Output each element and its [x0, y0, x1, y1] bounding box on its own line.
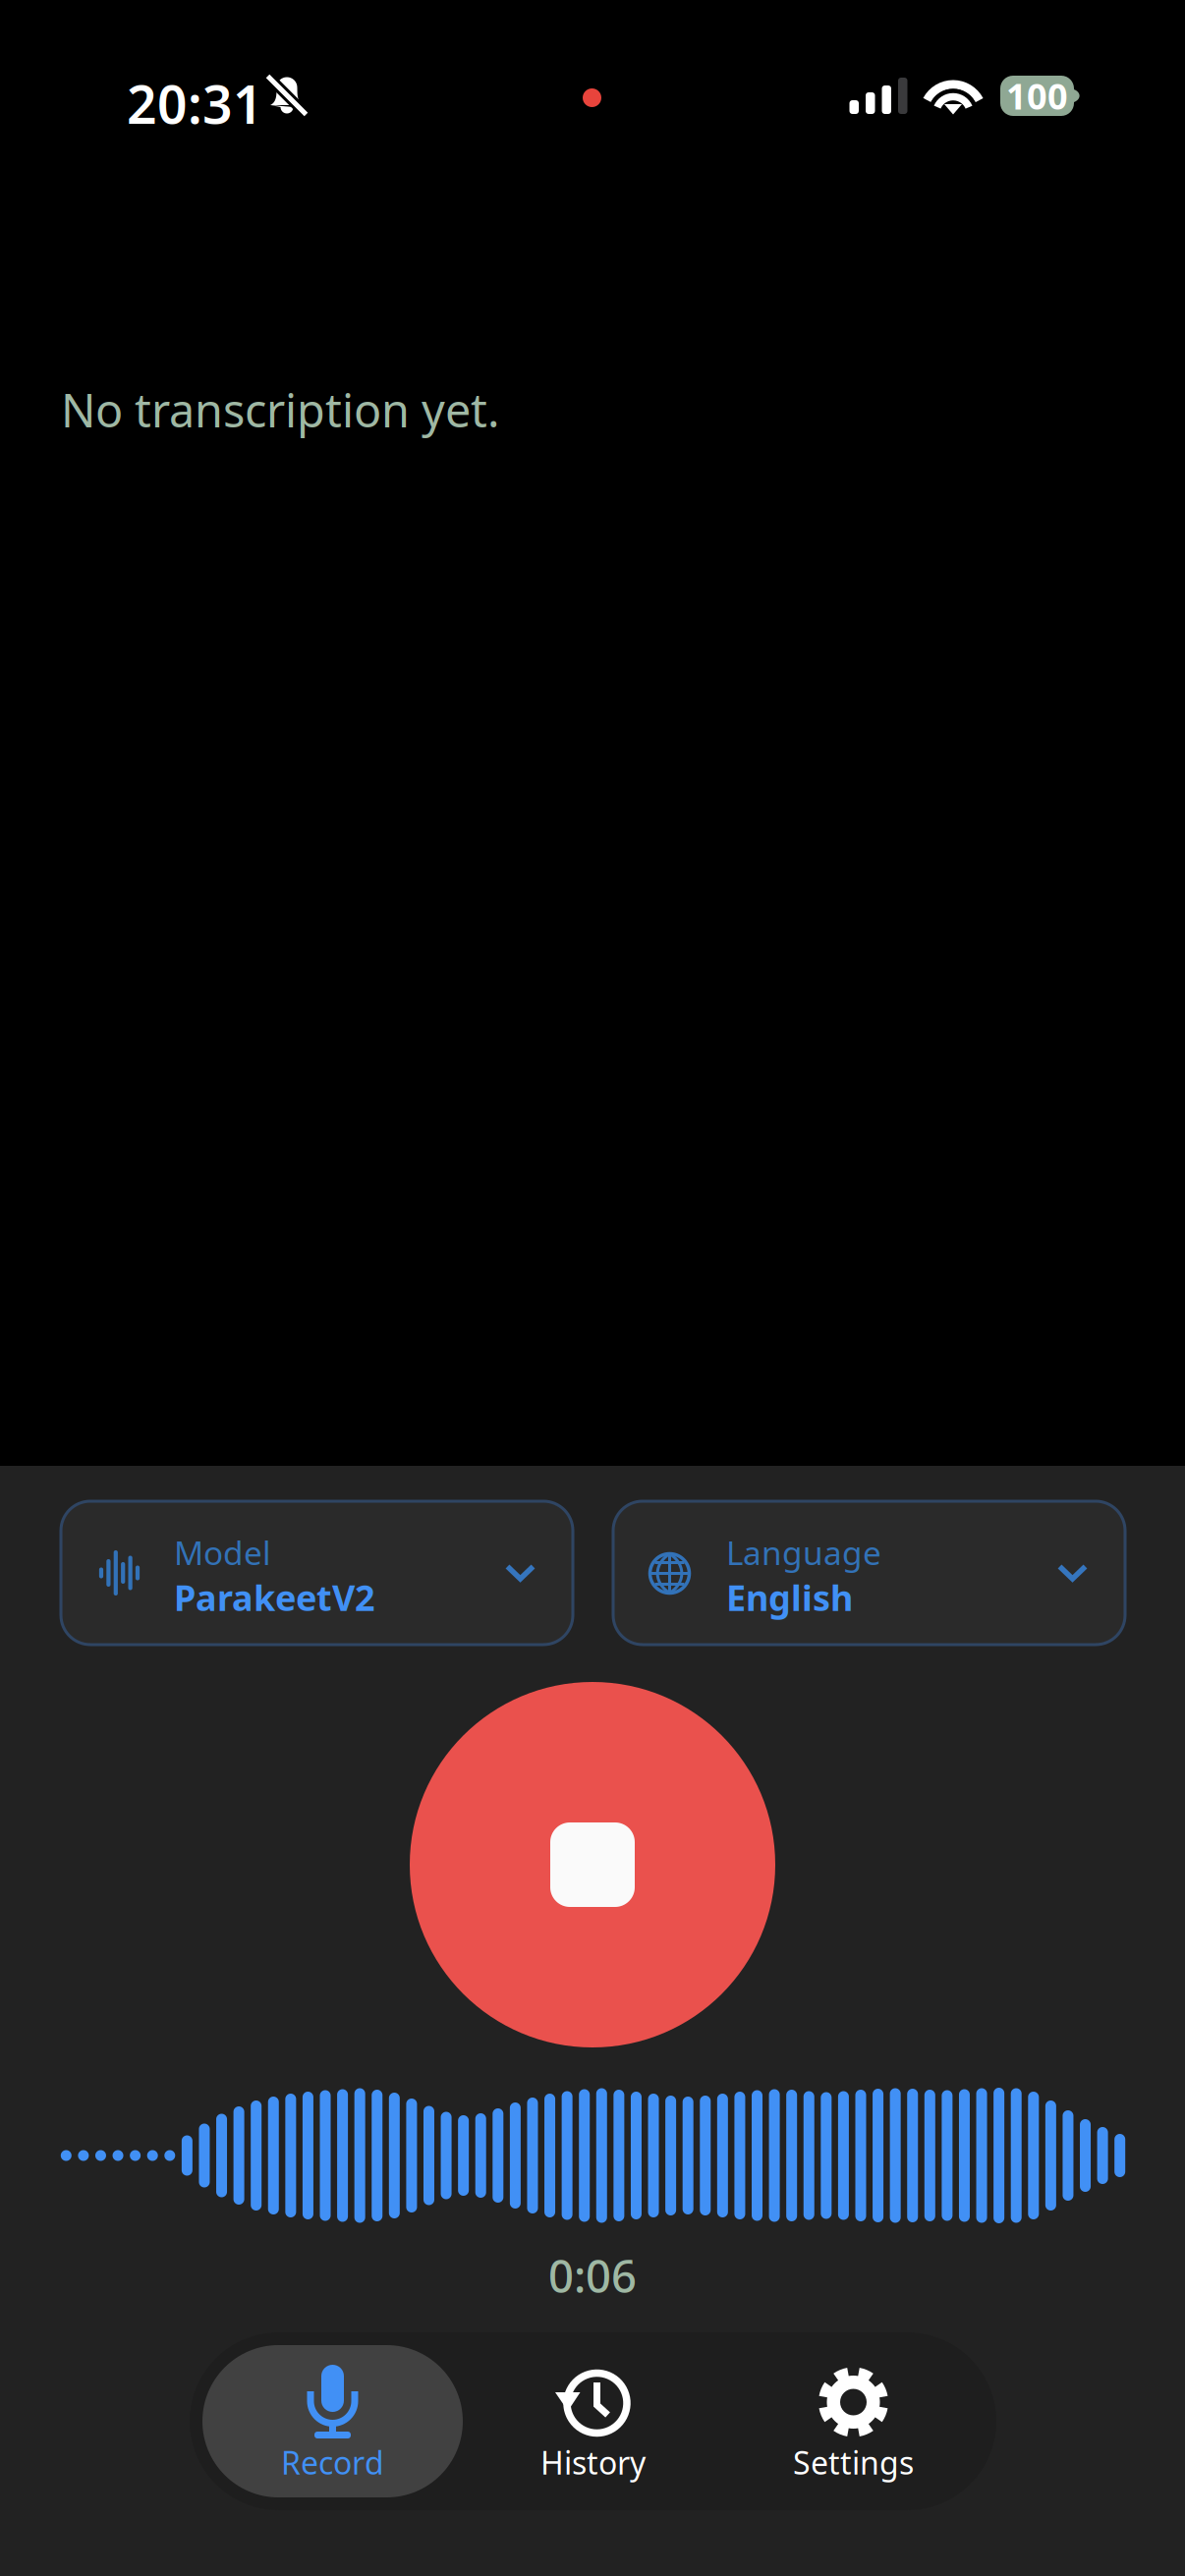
- staticText: English: [726, 1574, 853, 1621]
- staticText: No transcription yet.: [61, 379, 500, 440]
- button[interactable]: History: [463, 2345, 723, 2497]
- staticText: History: [540, 2441, 646, 2483]
- button[interactable]: Record: [202, 2345, 463, 2497]
- button[interactable]: Stop recording: [410, 1682, 775, 2047]
- button[interactable]: Settings: [723, 2345, 984, 2497]
- staticText: 20:31: [127, 69, 263, 138]
- staticText: 100: [1006, 72, 1068, 119]
- staticText: Model: [174, 1531, 271, 1574]
- staticText: Language: [726, 1531, 881, 1574]
- button[interactable]: Language: [613, 1501, 1125, 1645]
- staticText: Settings: [793, 2441, 914, 2483]
- staticText: 0:06: [548, 2246, 637, 2305]
- staticText: Record: [281, 2441, 384, 2483]
- staticText: ParakeetV2: [174, 1574, 375, 1621]
- button[interactable]: Model: [61, 1501, 573, 1645]
